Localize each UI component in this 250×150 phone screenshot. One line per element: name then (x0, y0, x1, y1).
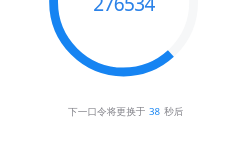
staticText: 下一口令将更换于 (68, 106, 146, 118)
button[interactable]: 276534 (93, 0, 155, 17)
other: One-time password countdown ring (0, 0, 250, 150)
staticText: 秒后 (164, 106, 184, 118)
button[interactable]: 下一口令将更换于 (1, 105, 250, 118)
staticText: 38 (149, 105, 161, 118)
